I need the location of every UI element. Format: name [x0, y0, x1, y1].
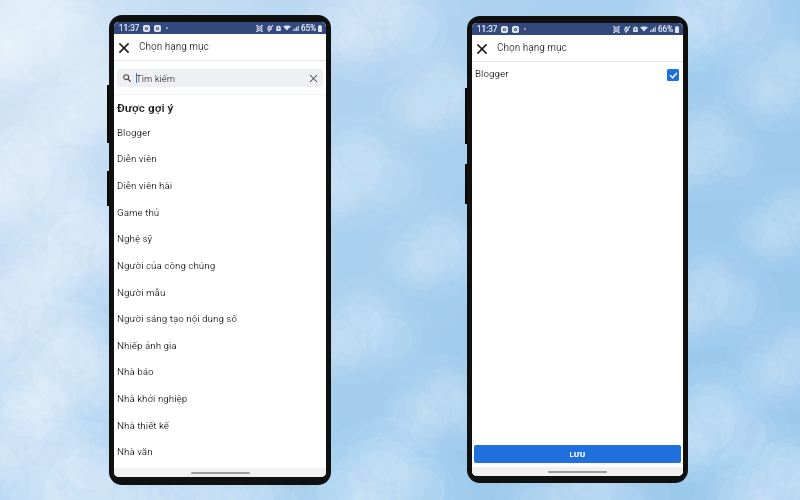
staticText: Chọn hạng mục — [139, 41, 209, 53]
button[interactable]: Blogger — [472, 62, 683, 88]
staticText: Người sáng tạo nội dung số — [117, 313, 237, 324]
button[interactable]: Nhà văn — [114, 438, 326, 465]
button[interactable]: Close — [474, 41, 489, 56]
staticText: Nghệ sỹ — [117, 233, 153, 244]
staticText: 11:37 — [477, 24, 498, 34]
button[interactable]: Blogger — [114, 119, 326, 146]
staticText: Nhà báo — [117, 366, 154, 377]
staticText: LƯU — [569, 450, 586, 459]
button[interactable]: Tìm kiếm — [117, 69, 323, 87]
button[interactable]: Nhiếp ảnh gia — [114, 332, 326, 359]
button[interactable]: Nhà báo — [114, 358, 326, 385]
staticText: Chọn hạng mục — [497, 42, 567, 54]
staticText: Blogger — [475, 68, 509, 79]
button[interactable]: Nghệ sỹ — [114, 225, 326, 252]
button[interactable]: Clear search — [307, 72, 320, 85]
button[interactable]: LƯU — [474, 445, 681, 463]
button[interactable]: Diễn viên hài — [114, 172, 326, 199]
staticText: Người mẫu — [117, 287, 166, 298]
button[interactable]: Người mẫu — [114, 279, 326, 306]
staticText: 65% — [301, 23, 317, 33]
staticText: Nhà văn — [117, 446, 153, 457]
staticText: Nhà khởi nghiệp — [117, 393, 188, 404]
staticText: Diễn viên — [117, 153, 157, 164]
staticText: Nhiếp ảnh gia — [117, 340, 177, 351]
button[interactable]: Game thủ — [114, 199, 326, 226]
staticText: Diễn viên hài — [117, 180, 173, 191]
staticText: Người của công chúng — [117, 260, 216, 271]
staticText: Game thủ — [117, 207, 160, 218]
button[interactable]: Người của công chúng — [114, 252, 326, 279]
other: Blogger selected — [667, 69, 679, 81]
button[interactable]: Close — [116, 40, 131, 55]
button[interactable]: Nhà khởi nghiệp — [114, 385, 326, 412]
staticText: Nhà thiết kế — [117, 420, 170, 431]
button[interactable]: Nhà thiết kế — [114, 412, 326, 439]
staticText: Tìm kiếm — [136, 73, 176, 84]
staticText: 66% — [658, 24, 674, 34]
staticText: Được gợi ý — [117, 101, 174, 115]
staticText: 11:37 — [119, 23, 140, 33]
button[interactable]: Diễn viên — [114, 145, 326, 172]
staticText: Blogger — [117, 127, 151, 138]
button[interactable]: Người sáng tạo nội dung số — [114, 305, 326, 332]
